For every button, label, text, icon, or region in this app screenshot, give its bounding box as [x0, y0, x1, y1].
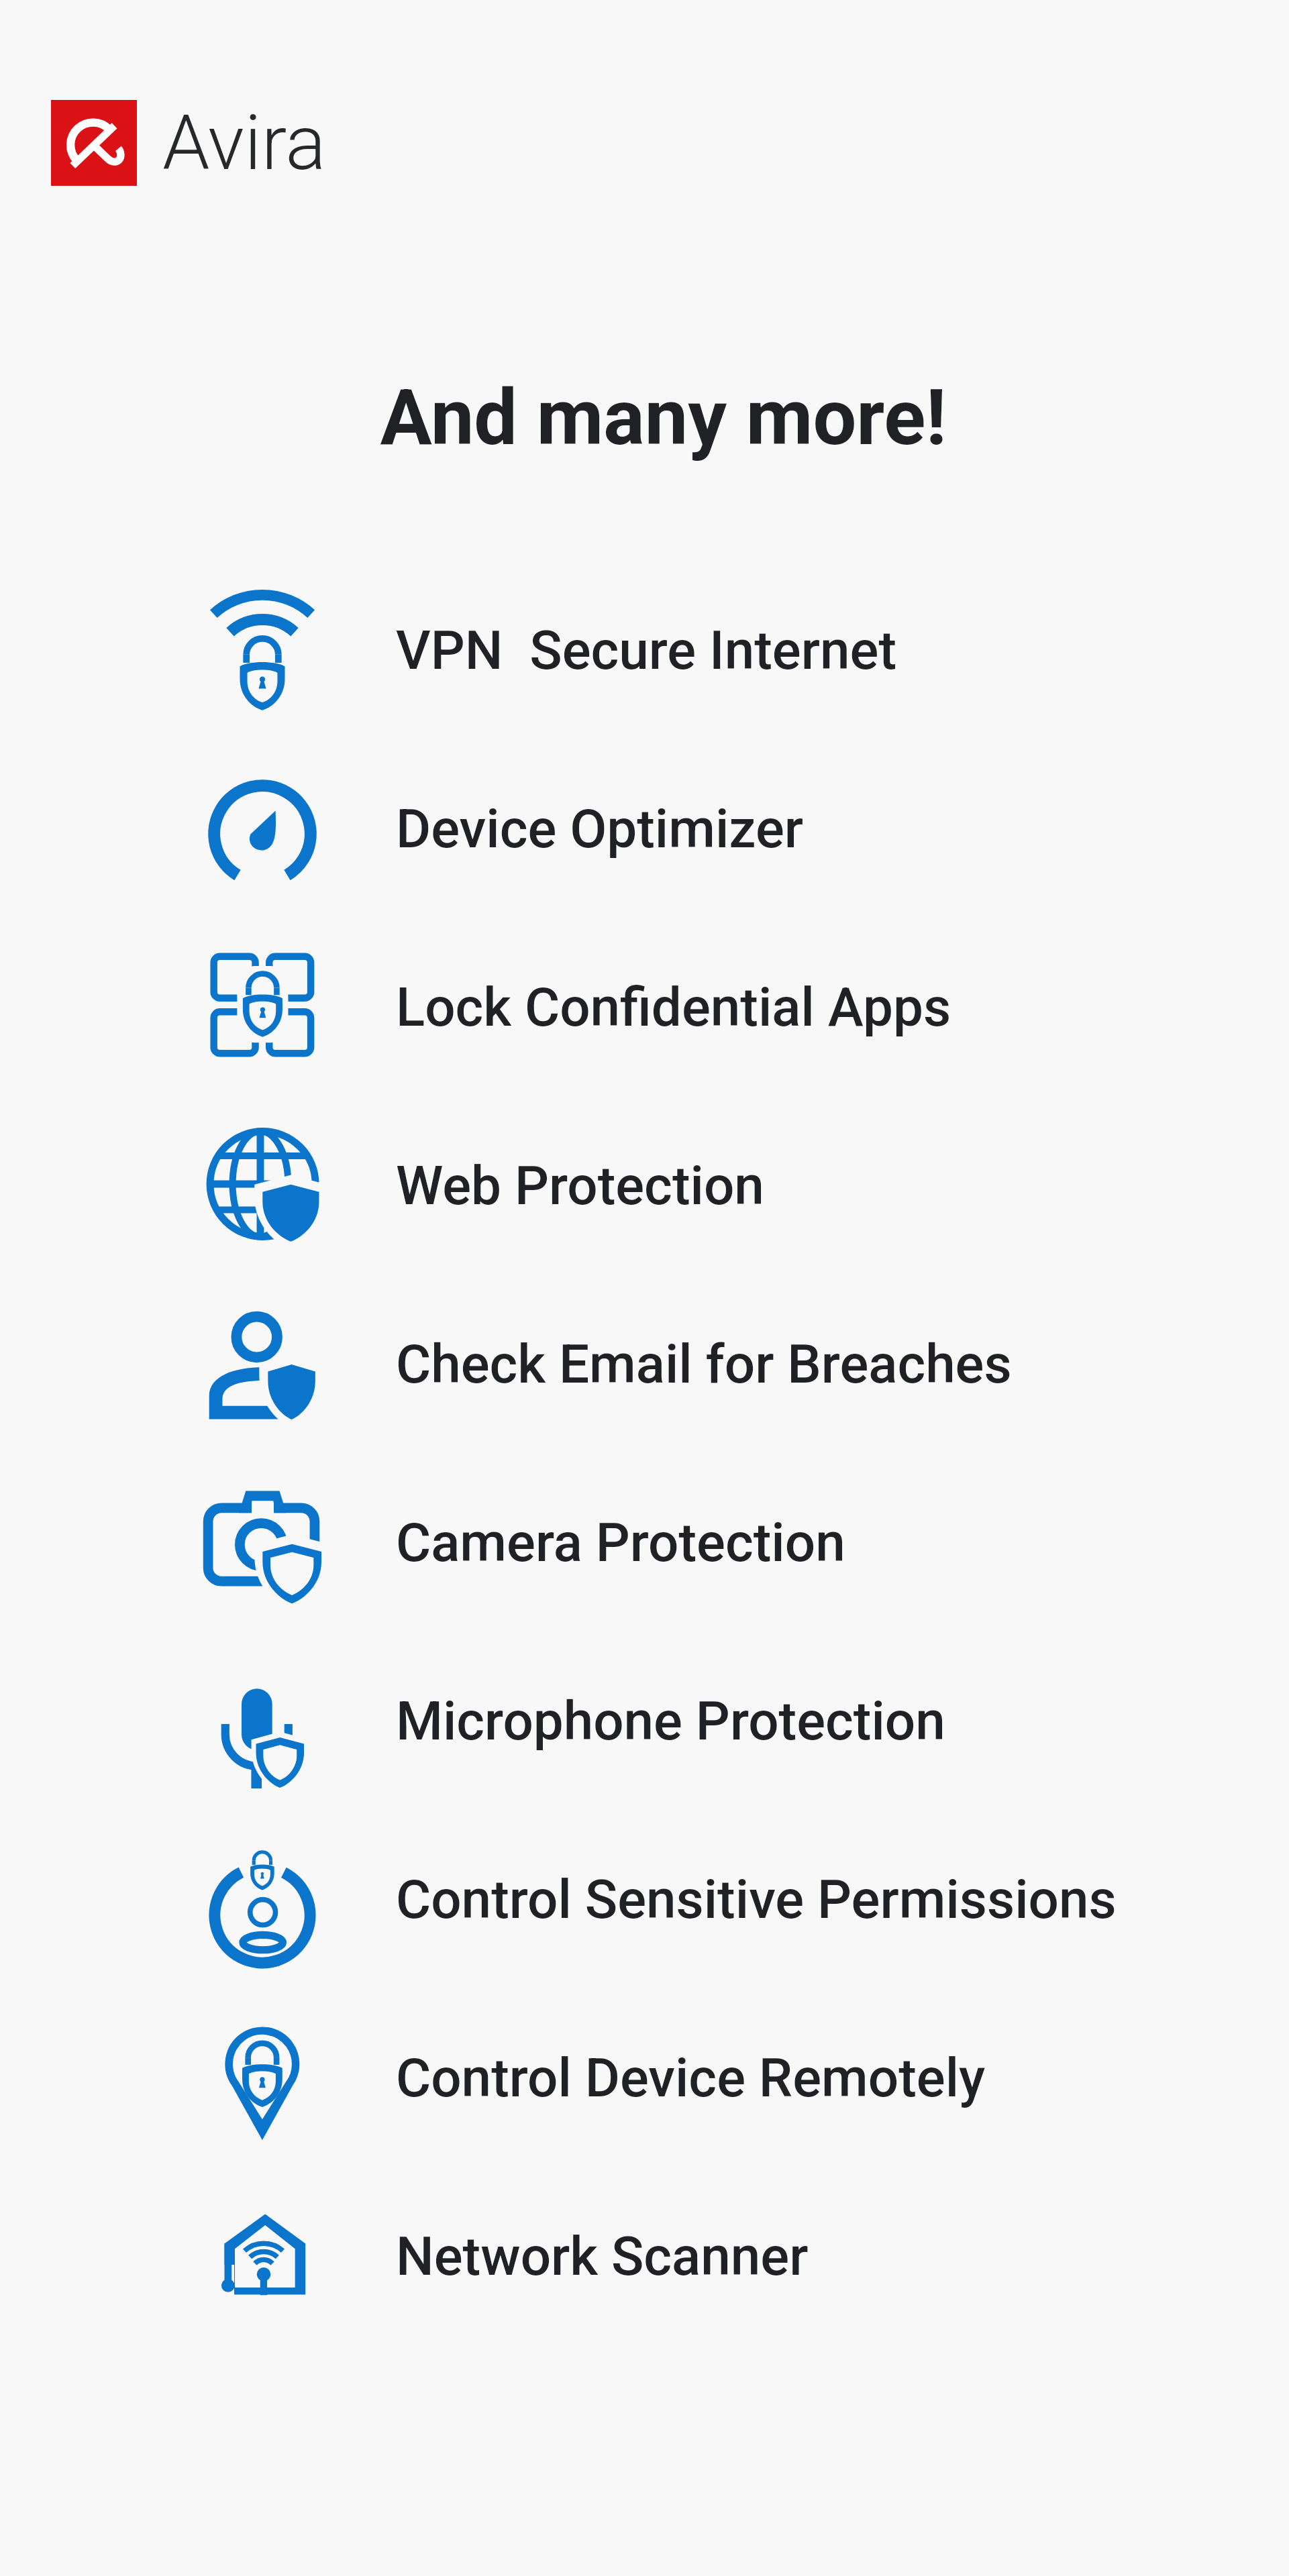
button[interactable]: Permissions [0, 1811, 1289, 1989]
other: VPN [195, 584, 329, 718]
other: Network scanner [195, 2190, 329, 2324]
button[interactable]: Camera protection [0, 1454, 1289, 1632]
button[interactable]: Microphone protection [0, 1632, 1289, 1811]
staticText: Microphone Protection [396, 1690, 945, 1753]
staticText: Camera Protection [396, 1511, 845, 1574]
staticText: Device Optimizer [396, 798, 804, 861]
other: App lock [195, 941, 329, 1075]
button[interactable]: Device Optimizer [0, 740, 1289, 918]
staticText: Web Protection [396, 1155, 764, 1218]
other: Avira [51, 100, 137, 186]
staticText: Lock Confidential Apps [396, 976, 951, 1039]
other: Microphone protection [195, 1654, 329, 1788]
button[interactable]: Web protection [0, 1097, 1289, 1275]
other: Permissions [195, 1833, 329, 1967]
staticText: Avira [162, 99, 326, 187]
button[interactable]: Remote control [0, 1989, 1289, 2167]
button[interactable]: Email breach check [0, 1275, 1289, 1454]
other: Remote control [195, 2011, 329, 2145]
button[interactable]: VPN [0, 561, 1289, 740]
staticText: Control Sensitive Permissions [396, 1868, 1117, 1931]
staticText: Check Email for Breaches [396, 1333, 1012, 1396]
staticText: Control Device Remotely [396, 2047, 986, 2110]
other: Camera protection [195, 1476, 329, 1610]
staticText: VPN Secure Internet [396, 619, 897, 682]
button[interactable]: App lock [0, 918, 1289, 1097]
button[interactable]: Network scanner [0, 2167, 1289, 2346]
other: Web protection [195, 1119, 329, 1253]
other: Device Optimizer [195, 762, 329, 896]
button[interactable]: Avira [51, 99, 326, 187]
staticText: And many more! [19, 372, 1289, 463]
other: Email breach check [195, 1297, 329, 1432]
staticText: Network Scanner [396, 2225, 809, 2288]
